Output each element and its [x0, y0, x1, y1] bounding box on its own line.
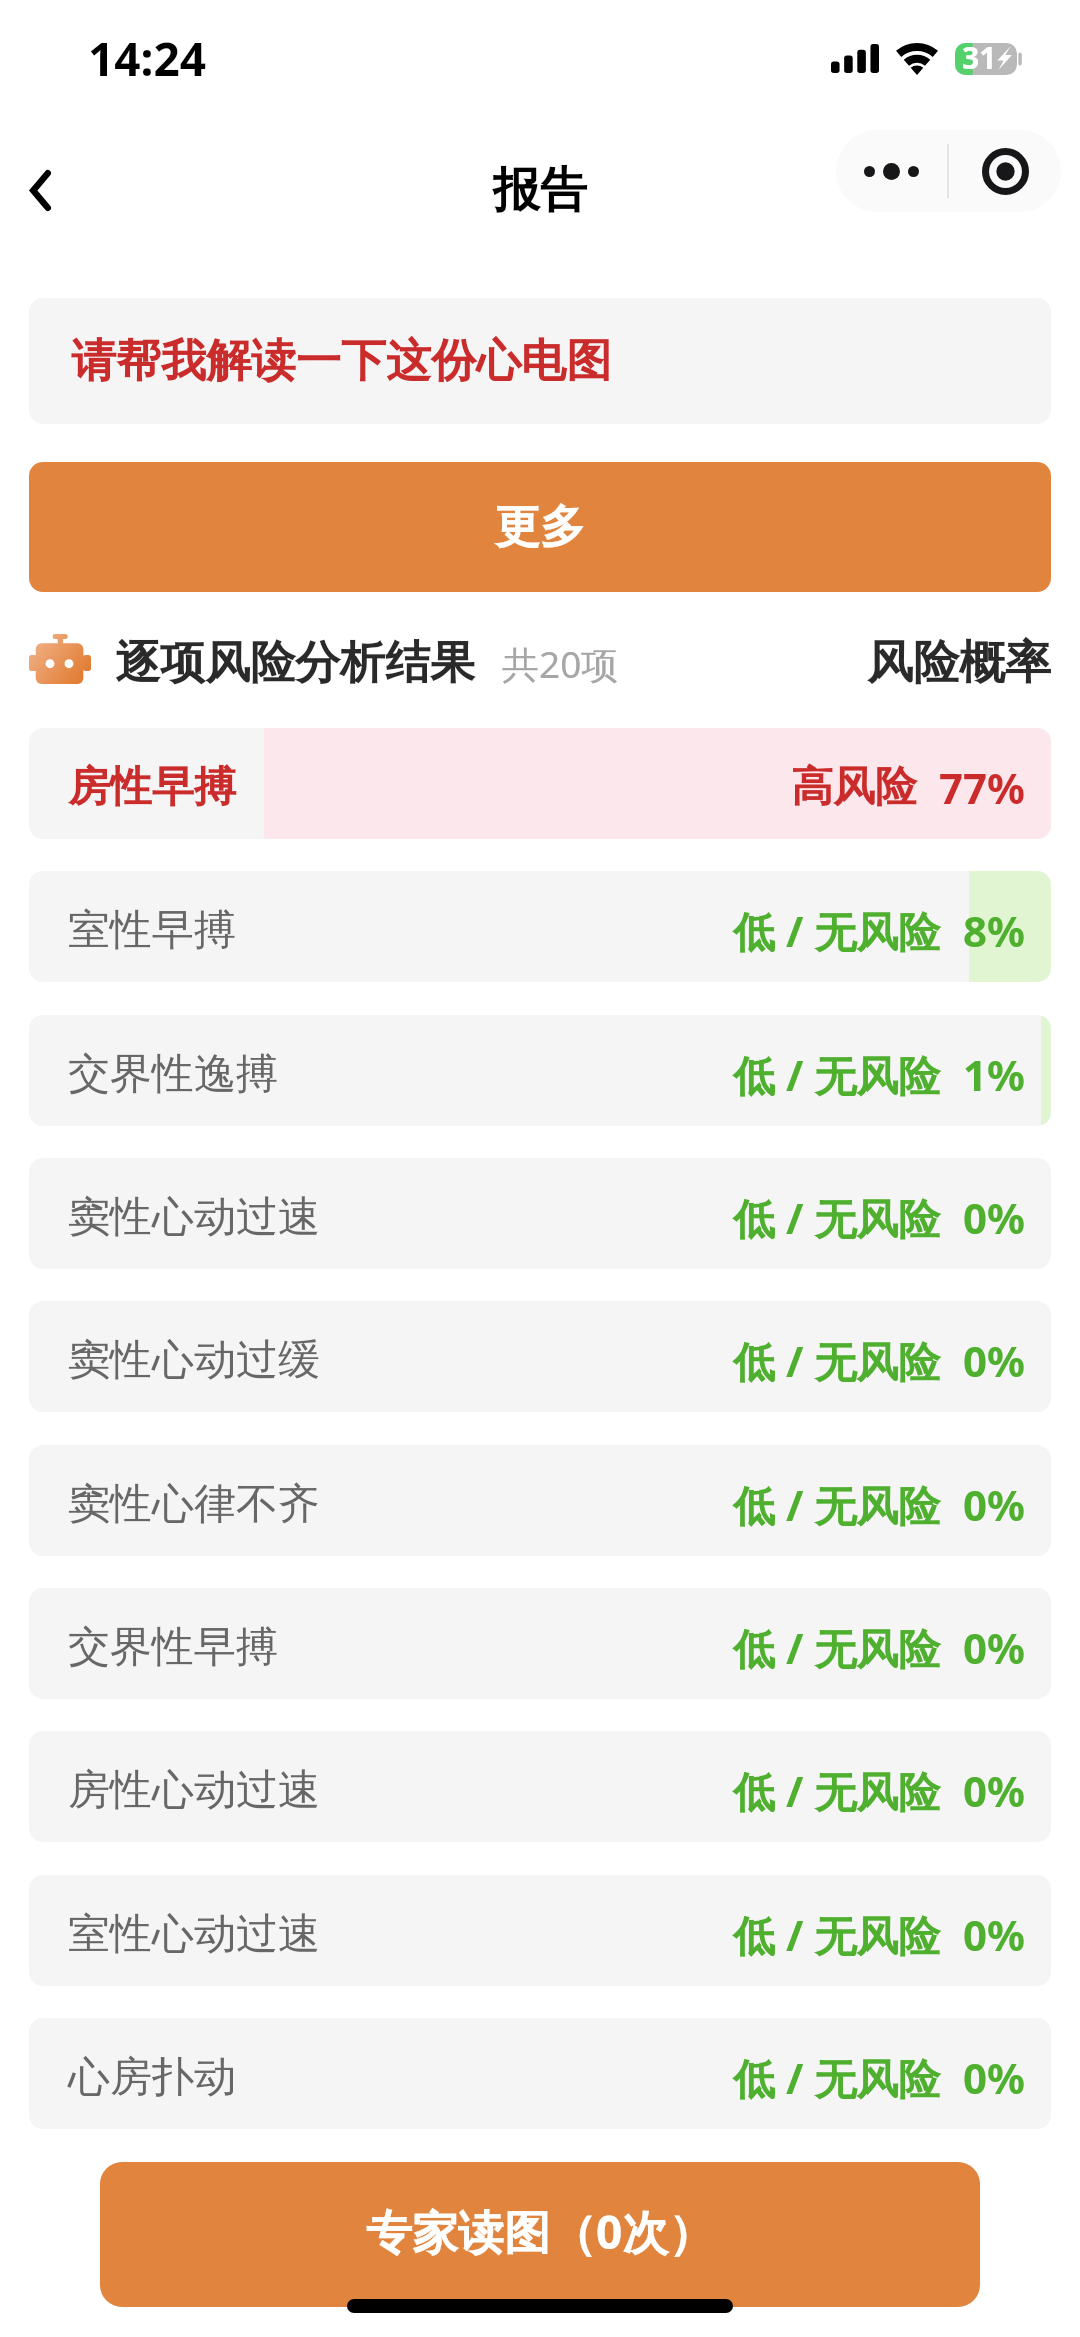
staticText: 请帮我解读一下这份心电图 — [71, 333, 611, 390]
button[interactable]: 室性心动过速 — [29, 1875, 1051, 1986]
staticText: 0% — [963, 1476, 1025, 1533]
staticText: 专家读图（0次） — [366, 2200, 715, 2263]
button[interactable]: 心房扑动 — [29, 2018, 1051, 2129]
staticText: 窦性心律不齐 — [68, 1478, 320, 1531]
staticText: 低 / 无风险 — [733, 1476, 941, 1533]
staticText: 0% — [963, 1762, 1025, 1819]
button[interactable]: 交界性逸搏 — [29, 1015, 1051, 1126]
staticText: 心房扑动 — [68, 2051, 236, 2104]
staticText: 高风险 — [791, 761, 917, 814]
staticText: 低 / 无风险 — [733, 1619, 941, 1676]
staticText: 房性心动过速 — [68, 1764, 320, 1817]
staticText: 风险概率 — [867, 634, 1051, 692]
button[interactable]: 专家读图（0次） — [100, 2162, 980, 2307]
staticText: 低 / 无风险 — [733, 902, 941, 959]
staticText: 低 / 无风险 — [733, 2049, 941, 2106]
staticText: 低 / 无风险 — [733, 1332, 941, 1389]
staticText: 0% — [963, 1619, 1025, 1676]
staticText: 逐项风险分析结果 — [115, 635, 475, 692]
staticText: 0% — [963, 1332, 1025, 1389]
button[interactable]: 房性早搏 — [29, 728, 1051, 839]
staticText: 1% — [963, 1046, 1025, 1103]
staticText: 室性心动过速 — [68, 1908, 320, 1961]
staticText: 报告 — [493, 161, 587, 220]
button[interactable]: 窦性心动过缓 — [29, 1301, 1051, 1412]
button[interactable]: 交界性早搏 — [29, 1588, 1051, 1699]
button[interactable]: 室性早搏 — [29, 871, 1051, 982]
button[interactable]: 窦性心动过速 — [29, 1158, 1051, 1269]
staticText: 低 / 无风险 — [733, 1046, 941, 1103]
staticText: 更多 — [495, 499, 585, 556]
staticText: 0% — [963, 2049, 1025, 2106]
staticText: 低 / 无风险 — [733, 1906, 941, 1963]
staticText: 77% — [939, 759, 1025, 816]
button[interactable]: 房性心动过速 — [29, 1731, 1051, 1842]
staticText: 14:24 — [88, 27, 207, 90]
button[interactable]: 更多 — [29, 462, 1051, 592]
button[interactable]: Back — [0, 141, 80, 239]
button[interactable]: Close mini program — [949, 130, 1061, 212]
button[interactable]: 窦性心律不齐 — [29, 1445, 1051, 1556]
staticText: 交界性逸搏 — [68, 1048, 278, 1101]
staticText: 共20项 — [502, 638, 619, 689]
staticText: 0% — [963, 1189, 1025, 1246]
button[interactable]: 请帮我解读一下这份心电图 — [29, 298, 1051, 424]
staticText: 0% — [963, 1906, 1025, 1963]
staticText: 室性早搏 — [68, 904, 236, 957]
button[interactable]: More options — [836, 130, 947, 212]
staticText: 31 — [962, 37, 997, 78]
staticText: 交界性早搏 — [68, 1621, 278, 1674]
staticText: 低 / 无风险 — [733, 1762, 941, 1819]
staticText: 8% — [963, 902, 1025, 959]
staticText: 低 / 无风险 — [733, 1189, 941, 1246]
staticText: 窦性心动过缓 — [68, 1334, 320, 1387]
staticText: 房性早搏 — [68, 761, 236, 814]
staticText: 窦性心动过速 — [68, 1191, 320, 1244]
